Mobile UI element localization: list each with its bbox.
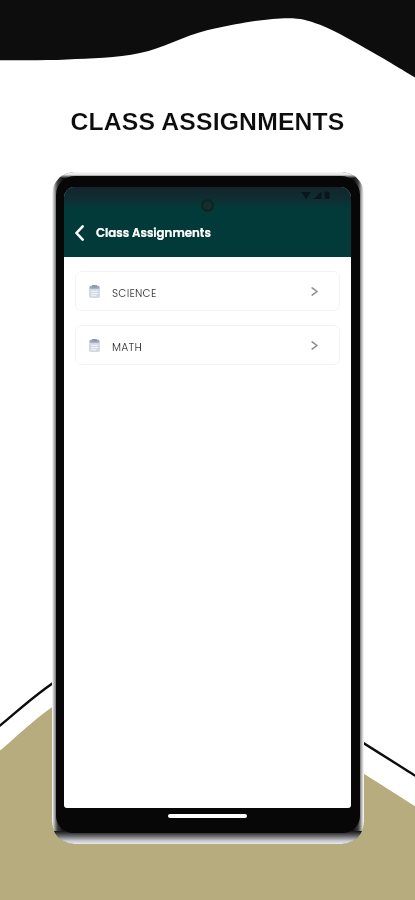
staticText: CLASS ASSIGNMENTS <box>0 108 415 136</box>
staticText: SCIENCE <box>112 286 157 301</box>
button[interactable]: MATH <box>75 325 340 365</box>
staticText: Class Assignments <box>96 225 211 242</box>
button[interactable]: SCIENCE <box>75 271 340 311</box>
button[interactable]: Back <box>68 222 90 244</box>
staticText: MATH <box>112 340 142 355</box>
